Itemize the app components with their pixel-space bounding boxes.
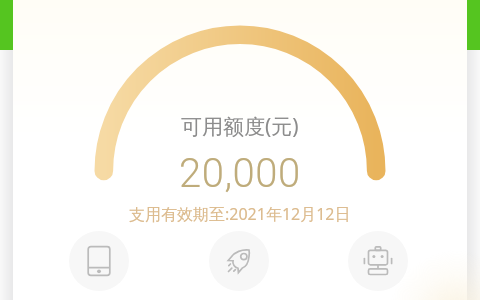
button[interactable]: Rocket [209, 231, 269, 291]
button[interactable]: Phone [69, 231, 129, 291]
staticText: 20,000 [179, 150, 301, 197]
staticText: 可用额度(元) [181, 112, 299, 141]
button[interactable]: Robot [348, 231, 408, 291]
staticText: 支用有效期至:2021年12月12日 [129, 203, 351, 225]
